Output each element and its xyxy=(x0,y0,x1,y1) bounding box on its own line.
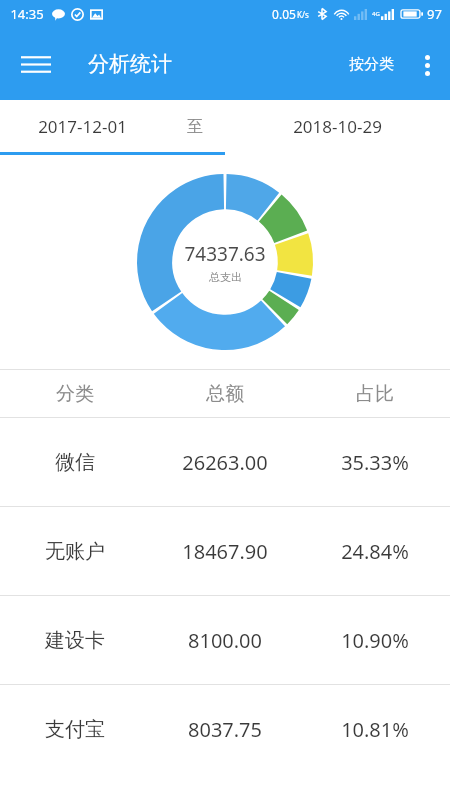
staticText: 10.81% xyxy=(341,716,409,743)
staticText: 14:35 xyxy=(10,5,44,23)
staticText: 26263.00 xyxy=(182,449,268,476)
staticText: 24.84% xyxy=(341,538,409,565)
staticText: 8037.75 xyxy=(188,716,262,743)
button[interactable]: Open navigation menu xyxy=(6,34,66,94)
staticText: 8100.00 xyxy=(188,627,262,654)
button[interactable]: 微信 xyxy=(0,418,450,506)
staticText: 建设卡 xyxy=(45,628,105,653)
staticText: 2018-10-29 xyxy=(293,115,382,138)
staticText: 占比 xyxy=(356,382,394,406)
staticText: 分类 xyxy=(56,382,94,406)
staticText: 无账户 xyxy=(45,539,105,564)
staticText: 35.33% xyxy=(341,449,409,476)
staticText: 2017-12-01 xyxy=(38,115,127,138)
button[interactable]: 按分类 xyxy=(339,41,404,88)
button[interactable]: 无账户 xyxy=(0,507,450,595)
staticText: 18467.90 xyxy=(182,538,268,565)
staticText: 总额 xyxy=(206,382,244,406)
staticText: 4G xyxy=(372,10,380,18)
staticText: 分析统计 xyxy=(88,51,172,77)
staticText: 微信 xyxy=(55,450,95,475)
button[interactable]: 支付宝 xyxy=(0,685,450,773)
staticText: 按分类 xyxy=(349,55,394,74)
button[interactable]: More options xyxy=(404,42,450,88)
staticText: 支付宝 xyxy=(45,717,105,742)
button[interactable]: 建设卡 xyxy=(0,596,450,684)
staticText: 74337.63 xyxy=(184,241,266,267)
staticText: K/s xyxy=(297,9,309,20)
staticText: 10.90% xyxy=(341,627,409,654)
button[interactable]: 2018-10-29 xyxy=(225,100,450,152)
staticText: 0.05 xyxy=(272,6,296,22)
staticText: 总支出 xyxy=(209,270,242,284)
staticText: 97 xyxy=(427,5,442,23)
staticText: 至 xyxy=(187,117,203,137)
button[interactable]: 2017-12-01 xyxy=(0,100,225,152)
